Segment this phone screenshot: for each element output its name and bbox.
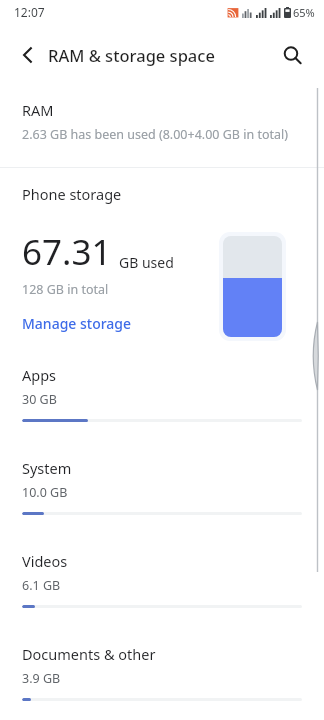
staticText: 12:07 <box>14 4 45 20</box>
button[interactable]: Videos <box>0 550 324 643</box>
staticText: Videos <box>22 551 68 571</box>
button[interactable]: RAM <box>0 86 324 167</box>
staticText: GB used <box>119 253 174 272</box>
button[interactable]: System <box>0 457 324 550</box>
staticText: 65% <box>293 5 315 20</box>
staticText: Apps <box>22 365 57 385</box>
staticText: 30 GB <box>22 391 57 408</box>
button[interactable]: Manage storage <box>22 313 138 334</box>
button[interactable]: Back <box>8 35 48 75</box>
staticText: 3.9 GB <box>22 670 61 687</box>
staticText: 128 GB in total <box>22 281 109 298</box>
staticText: RAM <box>22 100 54 120</box>
staticText: RAM & storage space <box>48 44 215 66</box>
staticText: 10.0 GB <box>22 484 68 501</box>
staticText: 6.1 GB <box>22 577 61 594</box>
button[interactable]: Apps <box>0 364 324 457</box>
staticText: System <box>22 458 72 478</box>
staticText: 67.31 <box>22 228 112 276</box>
staticText: Manage storage <box>22 314 132 333</box>
button[interactable]: Documents & other <box>0 643 324 720</box>
button[interactable]: Search <box>272 35 312 75</box>
staticText: Phone storage <box>22 184 122 204</box>
staticText: Documents & other <box>22 644 156 664</box>
staticText: 2.63 GB has been used (8.00+4.00 GB in t… <box>22 126 288 143</box>
